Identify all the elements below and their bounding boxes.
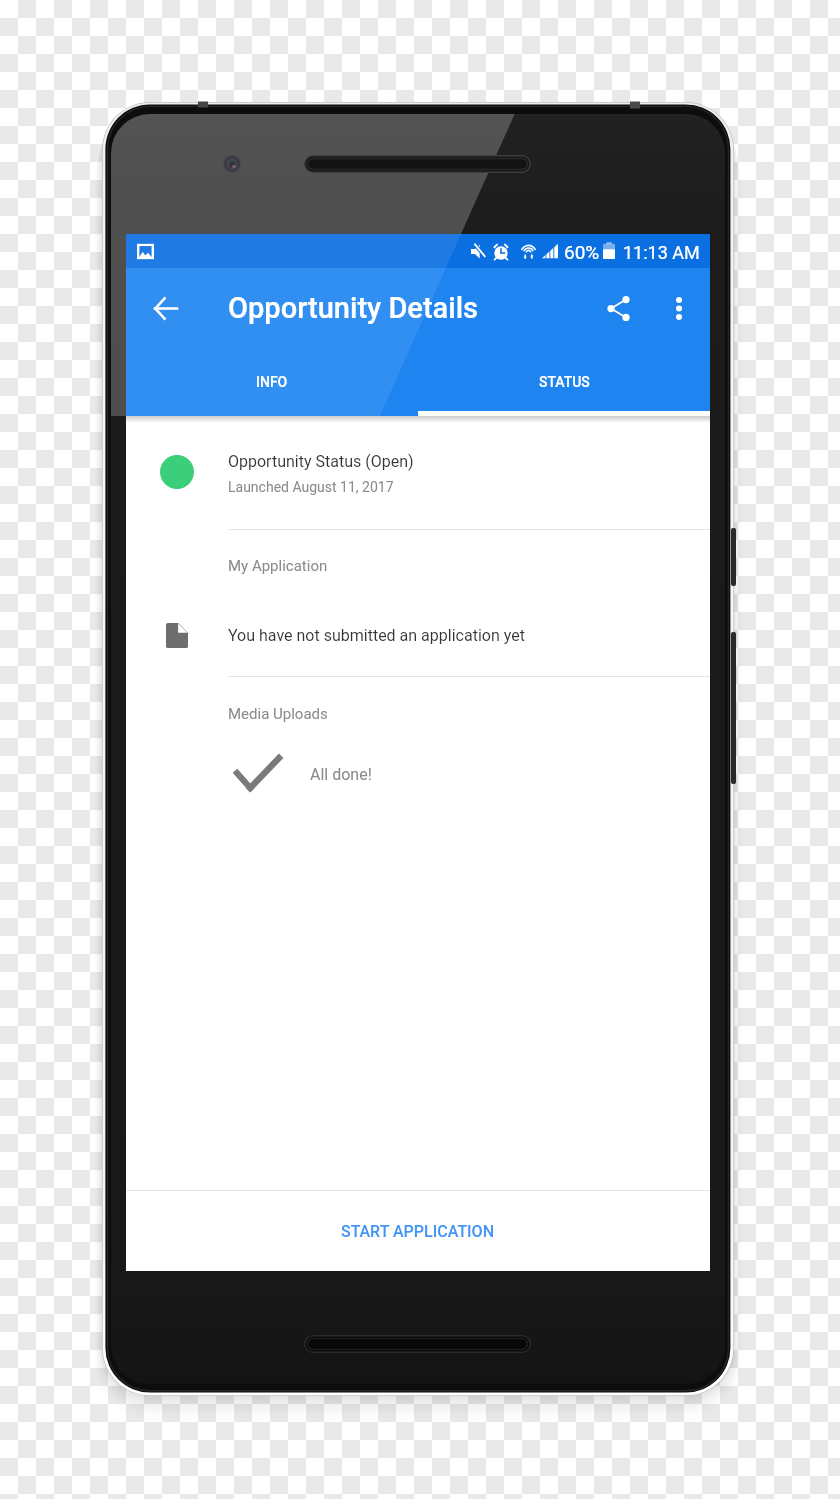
staticText: 60%	[564, 241, 600, 263]
staticText: Launched August 11, 2017	[228, 479, 394, 495]
staticText: INFO	[256, 374, 288, 390]
button[interactable]: Opportunity Status (Open)	[126, 416, 710, 529]
staticText: All done!	[310, 765, 372, 784]
staticText: START APPLICATION	[341, 1222, 495, 1241]
button[interactable]: You have not submitted an application ye…	[126, 604, 710, 662]
staticText: You have not submitted an application ye…	[228, 626, 525, 645]
button[interactable]: More options	[653, 282, 705, 334]
button[interactable]: START APPLICATION	[126, 1191, 710, 1271]
staticText: 11:13 AM	[623, 242, 700, 263]
staticText: STATUS	[539, 374, 590, 390]
staticText: Media Uploads	[228, 705, 328, 723]
button[interactable]: INFO	[126, 348, 418, 416]
button[interactable]: Share	[590, 280, 646, 336]
staticText: My Application	[228, 557, 328, 575]
staticText: Opportunity Status (Open)	[228, 452, 414, 471]
staticText: Opportunity Details	[228, 291, 479, 325]
button[interactable]: STATUS	[418, 348, 710, 416]
button[interactable]: Navigate up	[138, 280, 194, 336]
